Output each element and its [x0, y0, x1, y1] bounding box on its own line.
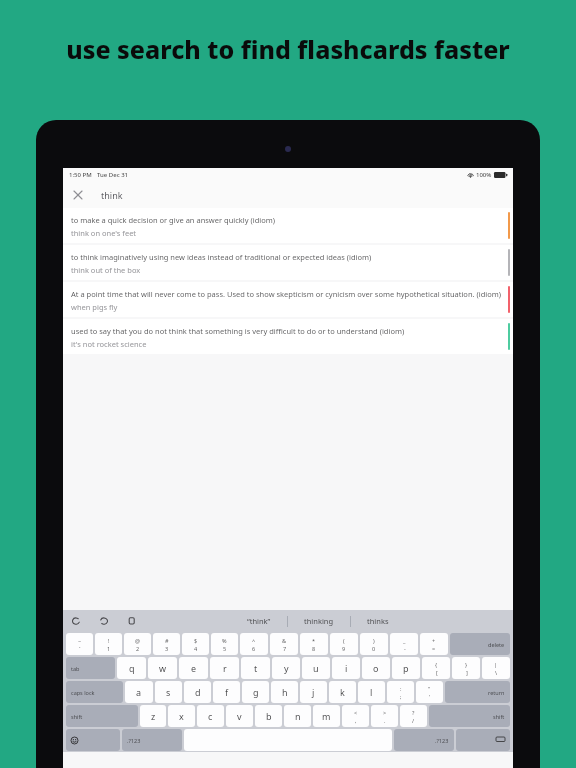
button[interactable]: At a point time that will never come to … [63, 282, 513, 317]
staticText: ) [373, 637, 375, 644]
staticText: = [432, 645, 436, 652]
staticText: 0 [372, 645, 376, 652]
button[interactable]: h [271, 681, 298, 703]
button[interactable]: delete [450, 633, 510, 655]
button[interactable]: y [272, 657, 300, 679]
button[interactable]: n [284, 705, 311, 727]
staticText: f [225, 686, 229, 698]
button[interactable]: z [140, 705, 166, 727]
button[interactable]: caps lock [66, 681, 123, 703]
button[interactable]: " [416, 681, 443, 703]
button[interactable]: v [226, 705, 253, 727]
button[interactable]: : [387, 681, 414, 703]
button[interactable]: Redo [97, 614, 111, 628]
button[interactable]: e [179, 657, 208, 679]
staticText: 1 [107, 645, 111, 652]
staticText: . [384, 717, 386, 724]
button[interactable]: shift [66, 705, 138, 727]
button[interactable]: p [392, 657, 420, 679]
staticText: & [282, 637, 287, 644]
button[interactable]: | [482, 657, 510, 679]
button[interactable]: q [117, 657, 146, 679]
button[interactable]: t [241, 657, 270, 679]
button[interactable]: ( [330, 633, 358, 655]
button[interactable]: thinking [304, 616, 334, 626]
staticText: ; [400, 693, 402, 700]
button[interactable]: f [213, 681, 240, 703]
staticText: thinks [367, 616, 389, 626]
button[interactable]: ~ [66, 633, 93, 655]
button[interactable]: _ [390, 633, 418, 655]
button[interactable]: Paste [125, 614, 139, 628]
button[interactable]: ! [95, 633, 122, 655]
button[interactable]: s [155, 681, 182, 703]
staticText: ! [108, 637, 110, 644]
staticText: when pigs fly [71, 302, 118, 312]
button[interactable]: # [153, 633, 180, 655]
button[interactable]: shift [429, 705, 510, 727]
staticText: z [151, 710, 156, 722]
staticText: + [432, 637, 436, 644]
button[interactable]: ) [360, 633, 388, 655]
button[interactable]: $ [182, 633, 209, 655]
staticText: 100% [476, 171, 492, 179]
button[interactable]: o [362, 657, 390, 679]
button[interactable]: c [197, 705, 224, 727]
staticText: " [428, 685, 431, 692]
staticText: Tue Dec 31 [97, 171, 129, 179]
staticText: shift [71, 713, 83, 720]
button[interactable]: a [125, 681, 153, 703]
button[interactable]: “think” [247, 616, 271, 626]
button[interactable]: k [329, 681, 356, 703]
staticText: 3 [165, 645, 169, 652]
staticText: \ [495, 669, 498, 676]
button[interactable]: i [332, 657, 360, 679]
button[interactable]: Undo [69, 614, 83, 628]
staticText: k [340, 686, 345, 698]
button[interactable]: @ [124, 633, 151, 655]
button[interactable]: b [255, 705, 282, 727]
staticText: i [345, 662, 348, 674]
button[interactable]: % [211, 633, 238, 655]
button[interactable]: used to say that you do not think that s… [63, 319, 513, 354]
button[interactable]: + [420, 633, 448, 655]
button[interactable]: to make a quick decision or give an answ… [63, 208, 513, 243]
button[interactable]: return [445, 681, 510, 703]
button[interactable]: < [342, 705, 369, 727]
button[interactable]: w [148, 657, 177, 679]
button[interactable]: r [210, 657, 239, 679]
staticText: caps lock [71, 689, 95, 696]
button[interactable]: { [422, 657, 450, 679]
button[interactable]: u [302, 657, 330, 679]
button[interactable]: tab [66, 657, 115, 679]
button[interactable]: g [242, 681, 269, 703]
button[interactable]: ^ [240, 633, 268, 655]
button[interactable]: ? [400, 705, 427, 727]
button[interactable]: m [313, 705, 340, 727]
button[interactable]: .?123 [394, 729, 454, 751]
button[interactable]: * [300, 633, 328, 655]
button[interactable]: Emoji [66, 729, 120, 751]
staticText: } [465, 661, 468, 668]
staticText: : [400, 685, 402, 692]
button[interactable]: to think imaginatively using new ideas i… [63, 245, 513, 280]
button[interactable]: } [452, 657, 480, 679]
button[interactable]: thinks [367, 616, 389, 626]
staticText: to think imaginatively using new ideas i… [71, 252, 372, 262]
staticText: “think” [247, 616, 271, 626]
staticText: ` [79, 645, 81, 652]
button[interactable]: d [184, 681, 211, 703]
button[interactable]: Hide keyboard [456, 729, 510, 751]
button[interactable]: Close search [69, 186, 87, 204]
staticText: shift [493, 713, 505, 720]
button[interactable]: > [371, 705, 398, 727]
button[interactable]: & [270, 633, 298, 655]
button[interactable]: .?123 [122, 729, 182, 751]
staticText: 7 [283, 645, 287, 652]
button[interactable]: j [300, 681, 327, 703]
staticText: < [354, 709, 358, 716]
staticText: ] [466, 669, 468, 676]
button[interactable]: x [168, 705, 195, 727]
button[interactable]: l [358, 681, 385, 703]
